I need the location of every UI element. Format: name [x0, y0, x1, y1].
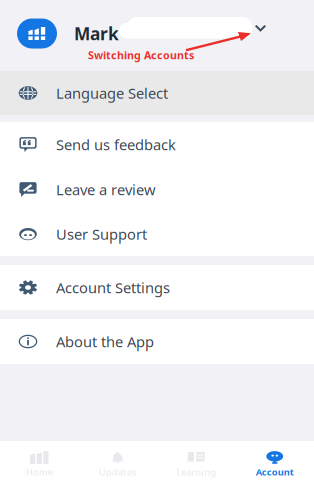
staticText: Send us feedback: [56, 135, 176, 154]
button[interactable]: Leave a review: [0, 167, 314, 212]
button[interactable]: Account Settings: [0, 265, 314, 310]
staticText: Account Settings: [56, 278, 170, 297]
staticText: Updates: [99, 466, 137, 478]
button[interactable]: Workspace logo: [17, 18, 57, 48]
staticText: User Support: [56, 224, 147, 244]
staticText: Home: [26, 466, 53, 478]
staticText: Account: [256, 466, 294, 478]
staticText: Switching Accounts: [88, 48, 194, 62]
staticText: Mark: [74, 22, 119, 45]
button[interactable]: User Support: [0, 212, 314, 256]
button[interactable]: Send us feedback: [0, 122, 314, 167]
button[interactable]: Home: [0, 441, 78, 483]
button[interactable]: Switch account: [250, 20, 271, 37]
staticText: Language Select: [56, 83, 168, 103]
button[interactable]: Account: [235, 441, 314, 483]
staticText: About the App: [56, 332, 154, 351]
staticText: Learning: [176, 466, 216, 478]
staticText: Leave a review: [56, 180, 156, 199]
button[interactable]: Mark: [57, 22, 123, 45]
button[interactable]: About the App: [0, 319, 314, 364]
button[interactable]: Updates: [78, 441, 157, 483]
button[interactable]: Language Select: [0, 71, 314, 115]
button[interactable]: Learning: [157, 441, 235, 483]
